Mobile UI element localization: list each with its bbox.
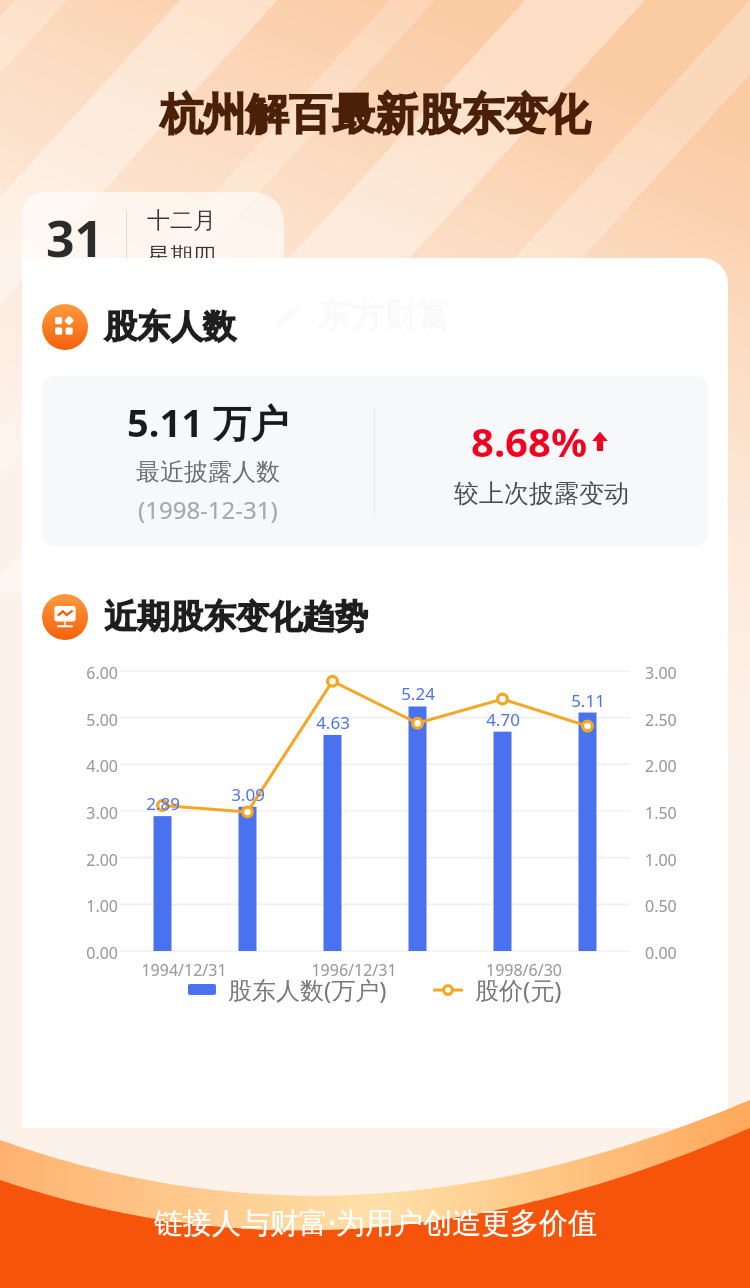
staticText: 2.50 <box>645 709 693 731</box>
staticText: 2.00 <box>70 849 118 871</box>
staticText: 最近披露人数 <box>136 457 280 487</box>
button[interactable]: 5.11 万户 <box>42 376 708 546</box>
staticText: 3.00 <box>645 662 693 684</box>
staticText: 8.68% <box>471 414 587 468</box>
other: 股东人数 <box>42 304 88 350</box>
staticText: 4.70 <box>479 708 527 731</box>
staticText: 31 <box>46 204 104 272</box>
staticText: 5.00 <box>70 709 118 731</box>
staticText: 0.50 <box>645 895 693 917</box>
staticText: 3.09 <box>224 783 272 806</box>
button[interactable]: 近期股东变化趋势 <box>42 594 368 640</box>
staticText: (1998-12-31) <box>138 493 278 526</box>
staticText: 1996/12/31 <box>294 959 414 981</box>
staticText: 1.00 <box>70 895 118 917</box>
button[interactable]: 股东人数 <box>42 304 236 350</box>
staticText: 较上次披露变动 <box>454 478 629 509</box>
staticText: 近期股东变化趋势 <box>104 596 368 638</box>
staticText: 1998/6/30 <box>464 959 584 981</box>
staticText: 2.00 <box>645 755 693 777</box>
staticText: 1.00 <box>645 849 693 871</box>
staticText: 杭州解百最新股东变化 <box>0 88 750 142</box>
button[interactable]: 31 <box>22 192 284 284</box>
staticText: 1994/12/31 <box>124 959 244 981</box>
staticText: 0.00 <box>70 942 118 964</box>
staticText: 3.00 <box>70 802 118 824</box>
staticText: 4.63 <box>309 711 357 734</box>
staticText: 十二月 <box>147 206 216 235</box>
staticText: 股东人数(万户) <box>228 973 387 1006</box>
staticText: 股价(元) <box>475 973 562 1006</box>
staticText: 5.24 <box>394 682 442 705</box>
staticText: 6.00 <box>70 662 118 684</box>
staticText: 4.00 <box>70 755 118 777</box>
staticText: 5.11 <box>564 689 612 712</box>
staticText: 5.11 万户 <box>127 396 289 448</box>
staticText: 0.00 <box>645 942 693 964</box>
staticText: 股东人数 <box>104 306 236 348</box>
staticText: 链接人与财富·为用户创造更多价值 <box>154 1202 597 1242</box>
staticText: 星期四 <box>147 242 216 271</box>
staticText: 1.50 <box>645 802 693 824</box>
other: 近期股东变化趋势 <box>42 594 88 640</box>
staticText: 2.89 <box>139 792 187 815</box>
